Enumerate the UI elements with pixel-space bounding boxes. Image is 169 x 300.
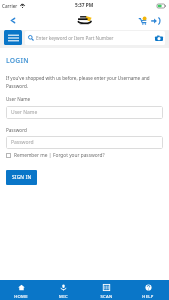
button[interactable]: Remember me <box>6 153 11 158</box>
staticText: User Name <box>6 96 31 102</box>
staticText: SIGN IN <box>12 174 32 181</box>
button[interactable]: SCAN <box>85 280 127 300</box>
button[interactable]: HELP <box>127 280 169 300</box>
button[interactable]: Camera search <box>154 34 163 43</box>
button[interactable]: Sign in <box>149 14 160 27</box>
staticText: User Name <box>11 109 38 116</box>
staticText: 5:37 PM <box>75 2 94 9</box>
button[interactable]: Remember me | <box>14 152 53 159</box>
button[interactable]: Back <box>6 14 19 27</box>
button[interactable]: SIGN IN <box>6 170 37 185</box>
button[interactable]: Menu <box>4 30 22 45</box>
button[interactable]: Password <box>6 136 163 149</box>
staticText: HELP <box>142 294 154 300</box>
button[interactable]: Cart <box>137 14 148 27</box>
button[interactable]: Enter keyword or Item Part Number <box>25 31 165 45</box>
button[interactable]: Forgot your password? <box>53 152 105 159</box>
button[interactable]: HOME <box>0 280 42 300</box>
staticText: MIC <box>59 294 68 300</box>
button[interactable]: MIC <box>42 280 84 300</box>
staticText: SCAN <box>100 294 113 300</box>
staticText: Carrier <box>2 3 18 9</box>
staticText: HOME <box>14 294 28 300</box>
staticText: If you've shopped with us before, please… <box>6 75 164 89</box>
staticText: Password <box>6 127 27 133</box>
button[interactable]: User Name <box>6 106 163 119</box>
staticText: Enter keyword or Item Part Number <box>36 35 114 41</box>
staticText: Password <box>11 139 34 146</box>
staticText: LOGIN <box>6 56 29 65</box>
